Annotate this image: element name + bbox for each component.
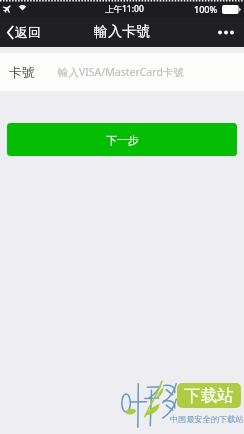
button[interactable]: 下一步 (7, 123, 237, 156)
staticText: 下一步 (106, 133, 139, 147)
button[interactable]: More options (210, 22, 244, 43)
button[interactable]: 返回 (0, 20, 49, 44)
staticText: 100% (194, 3, 218, 15)
staticText: 返回 (15, 24, 41, 40)
staticText: 卡號 (9, 64, 35, 80)
staticText: 輸入VISA/MasterCard卡號 (58, 65, 184, 79)
staticText: 上午11:00 (105, 3, 144, 15)
staticText: 下载站 (184, 385, 234, 406)
button[interactable]: 卡號 (0, 53, 244, 91)
staticText: 輸入卡號 (94, 23, 150, 41)
staticText: 中国最安全的下载站 (170, 414, 244, 424)
